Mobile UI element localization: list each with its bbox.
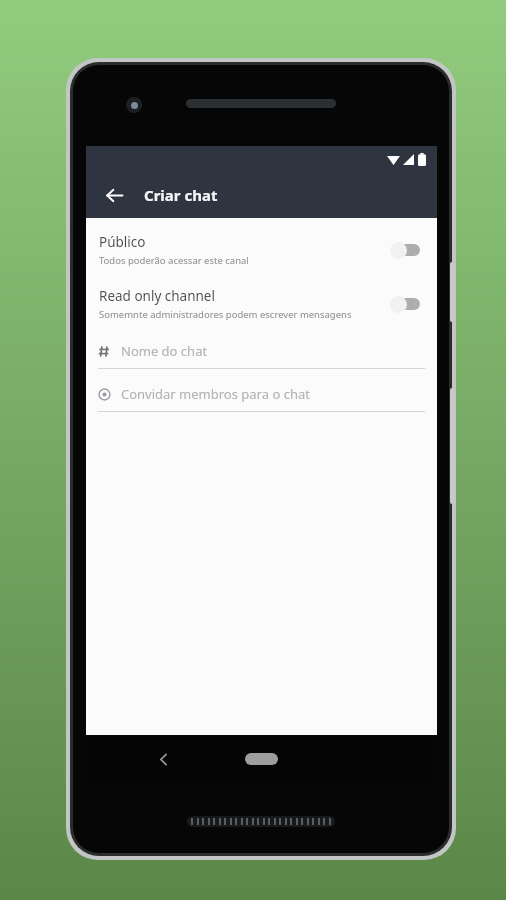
button[interactable]: Nome do chat xyxy=(86,342,437,369)
button[interactable]: Back xyxy=(148,744,178,774)
staticText: Público xyxy=(99,233,146,251)
button[interactable]: Back xyxy=(96,177,132,213)
staticText: Criar chat xyxy=(144,185,218,205)
staticText: Read only channel xyxy=(99,287,215,305)
staticText: Somemnte administradores podem escrever … xyxy=(99,308,352,321)
button[interactable]: Convidar membros para o chat xyxy=(86,385,437,412)
staticText: Todos poderão acessar este canal xyxy=(99,254,249,267)
button[interactable]: Read only channel xyxy=(86,282,437,326)
button[interactable]: Público xyxy=(86,228,437,272)
button[interactable]: Home xyxy=(245,753,278,765)
staticText: Nome do chat xyxy=(121,342,208,360)
staticText: Convidar membros para o chat xyxy=(121,385,310,403)
